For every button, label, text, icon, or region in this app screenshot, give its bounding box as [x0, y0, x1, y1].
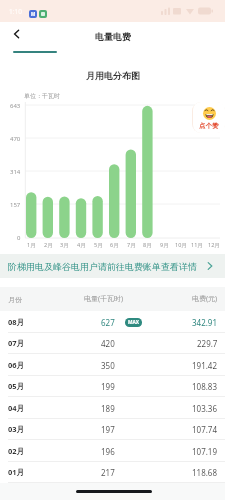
staticText: 196 [101, 446, 115, 457]
staticText: 1月 [27, 241, 36, 249]
staticText: 191.42 [192, 360, 218, 371]
staticText: M [31, 11, 36, 17]
staticText: 点个赞 [199, 122, 219, 130]
staticText: 627 [101, 317, 115, 328]
staticText: 1:10 [9, 7, 22, 16]
staticText: 2月 [44, 241, 53, 249]
staticText: 197 [101, 424, 115, 435]
staticText: 107.19 [192, 446, 218, 457]
staticText: 7月 [127, 241, 136, 249]
staticText: 470 [10, 135, 21, 143]
button[interactable]: 03月 [0, 418, 225, 440]
staticText: 342.91 [192, 317, 218, 328]
button[interactable]: 06月 [0, 354, 225, 376]
staticText: 9月 [160, 241, 169, 249]
button[interactable] [8, 26, 24, 42]
staticText: 阶梯用电及峰谷电用户请前往电费账单查看详情 [8, 261, 197, 272]
button[interactable]: 04月 [0, 397, 225, 419]
staticText: 118.68 [192, 467, 218, 478]
staticText: 157 [10, 201, 21, 209]
staticText: 107.74 [192, 424, 218, 435]
staticText: 0 [17, 234, 21, 242]
button[interactable]: 01月 [0, 461, 225, 483]
staticText: 199 [101, 381, 115, 392]
staticText: 03月 [8, 424, 25, 434]
staticText: 420 [101, 338, 115, 349]
staticText: 01月 [8, 467, 25, 477]
staticText: 电量(千瓦时) [84, 294, 124, 304]
button[interactable]: 07月 [0, 332, 225, 354]
staticText: 08月 [8, 317, 25, 327]
staticText: 643 [10, 102, 21, 110]
button[interactable]: 02月 [0, 440, 225, 462]
staticText: 电费(元) [192, 294, 218, 304]
staticText: 6月 [110, 241, 119, 249]
staticText: 108.83 [192, 381, 218, 392]
staticText: 314 [10, 168, 21, 176]
staticText: 5月 [94, 241, 103, 249]
staticText: MAX [128, 319, 140, 326]
staticText: 229.7 [197, 338, 218, 349]
staticText: 02月 [8, 446, 25, 456]
staticText: 3月 [60, 241, 69, 249]
staticText: 10月 [175, 241, 187, 249]
staticText: 单位：千瓦时 [24, 92, 60, 100]
button[interactable]: 08月 [0, 311, 225, 333]
staticText: 4月 [77, 241, 86, 249]
staticText: 05月 [8, 381, 25, 391]
staticText: 8月 [143, 241, 152, 249]
button[interactable]: 05月 [0, 375, 225, 397]
staticText: 11月 [191, 241, 203, 249]
staticText: 350 [101, 360, 115, 371]
staticText: 103.36 [192, 403, 218, 414]
staticText: 月用电分布图 [86, 70, 140, 81]
staticText: 06月 [8, 360, 25, 370]
staticText: 12月 [208, 241, 220, 249]
button[interactable]: 点个赞 [193, 102, 225, 133]
staticText: 217 [101, 467, 115, 478]
staticText: 电量电费 [95, 31, 131, 42]
button[interactable]: 阶梯用电及峰谷电用户请前往电费账单查看详情 [0, 254, 225, 278]
staticText: 04月 [8, 403, 25, 413]
staticText: 189 [101, 403, 115, 414]
staticText: 07月 [8, 338, 25, 348]
staticText: 月份 [8, 295, 22, 304]
